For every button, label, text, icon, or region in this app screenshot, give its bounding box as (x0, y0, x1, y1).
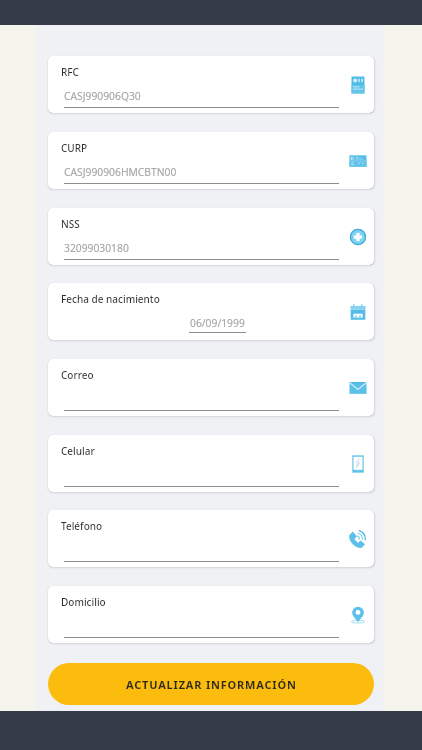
button[interactable]: CURP (48, 132, 374, 189)
staticText: NSS (61, 217, 80, 231)
button[interactable]: RFC (48, 56, 374, 113)
staticText: Teléfono (61, 519, 103, 533)
staticText: 06/09/1999 (190, 316, 245, 330)
staticText: Domicilio (61, 595, 106, 609)
staticText: Correo (61, 368, 94, 382)
button[interactable]: Fecha de nacimiento (48, 283, 374, 340)
button[interactable]: Fecha de nacimiento (347, 301, 368, 322)
staticText: ACTUALIZAR INFORMACIÓN (126, 677, 297, 692)
button[interactable]: NSS (48, 208, 374, 265)
staticText: CURP (61, 141, 88, 155)
button[interactable]: Correo (347, 377, 368, 398)
button[interactable]: ACTUALIZAR INFORMACIÓN (48, 663, 374, 705)
staticText: Celular (61, 444, 95, 458)
staticText: Fecha de nacimiento (61, 292, 160, 306)
button[interactable]: Teléfono (48, 510, 374, 567)
staticText: CASJ990906HMCBTN00 (64, 165, 177, 179)
button[interactable]: RFC (347, 74, 368, 95)
button[interactable]: Domicilio (347, 604, 368, 625)
staticText: RFC (61, 65, 79, 79)
staticText: CASJ990906Q30 (64, 89, 141, 103)
button[interactable]: Correo (48, 359, 374, 416)
button[interactable]: Domicilio (48, 586, 374, 643)
button[interactable]: Celular (347, 453, 368, 474)
staticText: 32099030180 (64, 241, 129, 255)
button[interactable]: Teléfono (347, 528, 368, 549)
button[interactable]: Celular (48, 435, 374, 492)
button[interactable]: CURP (347, 150, 368, 171)
button[interactable]: NSS (347, 226, 368, 247)
